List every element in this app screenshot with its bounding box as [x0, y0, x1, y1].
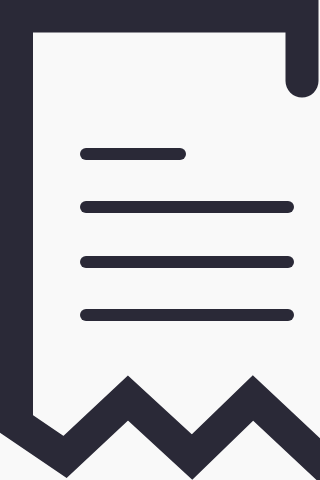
button[interactable]: Receipt — [0, 0, 320, 480]
